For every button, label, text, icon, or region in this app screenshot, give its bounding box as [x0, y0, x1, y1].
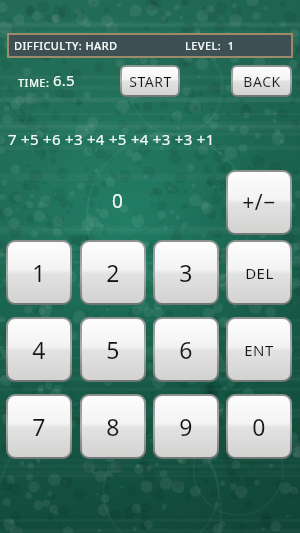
button[interactable]: 6 [153, 317, 219, 382]
staticText: 5 [106, 334, 120, 365]
staticText: 7 +5 +6 +3 +4 +5 +4 +3 +3 +1 [8, 129, 215, 149]
button[interactable]: DEL [226, 240, 292, 305]
staticText: 2 [106, 257, 120, 288]
staticText: 8 [106, 411, 120, 442]
staticText: 0 [252, 411, 266, 442]
button[interactable]: BACK [231, 65, 292, 97]
button[interactable]: ENT [226, 317, 292, 382]
staticText: 4 [32, 334, 46, 365]
button[interactable]: 1 [6, 240, 72, 305]
button[interactable]: 3 [153, 240, 219, 305]
staticText: 6 [179, 334, 193, 365]
staticText: 7 [32, 411, 46, 442]
staticText: +/− [242, 188, 276, 217]
staticText: DIFFICULTY: HARD [14, 38, 118, 53]
button[interactable]: 0 [226, 394, 292, 459]
button[interactable]: 2 [80, 240, 146, 305]
button[interactable]: 9 [153, 394, 219, 459]
staticText: TIME: [18, 75, 53, 90]
staticText: 9 [179, 411, 193, 442]
staticText: 0 [112, 188, 123, 214]
staticText: LEVEL: 1 [185, 38, 235, 53]
staticText: 3 [179, 257, 193, 288]
button[interactable]: 8 [80, 394, 146, 459]
staticText: DEL [245, 263, 274, 283]
staticText: BACK [243, 72, 281, 91]
button[interactable]: START [120, 65, 180, 97]
button[interactable]: DIFFICULTY: HARD [7, 33, 293, 58]
staticText: ENT [244, 340, 274, 360]
staticText: 6.5 [53, 70, 75, 90]
button[interactable]: +/− [226, 170, 292, 235]
button[interactable]: 4 [6, 317, 72, 382]
staticText: START [129, 72, 172, 91]
staticText: 1 [32, 257, 46, 288]
button[interactable]: 7 [6, 394, 72, 459]
button[interactable]: 5 [80, 317, 146, 382]
